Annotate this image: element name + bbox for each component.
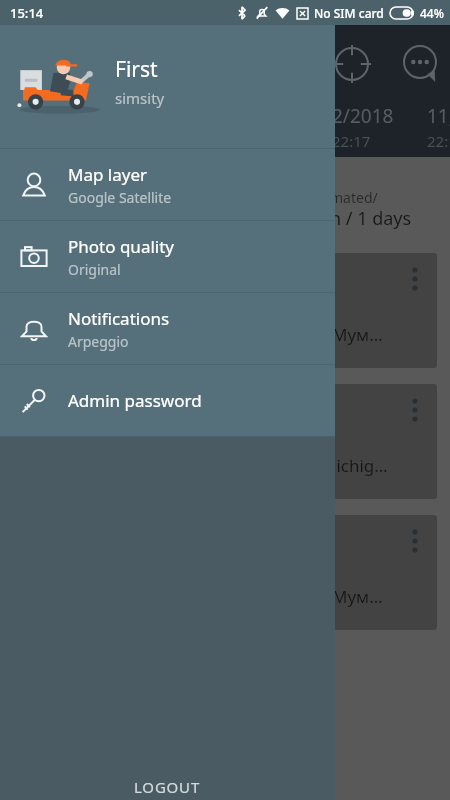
staticText: h / 1 days <box>330 206 412 231</box>
staticText: simsity <box>115 88 165 108</box>
staticText: 2/2018 <box>332 103 394 129</box>
button[interactable]: More options <box>403 267 427 291</box>
staticText: Мум… <box>332 323 383 346</box>
staticText: Google Satellite <box>68 188 172 207</box>
staticText: lichig… <box>332 454 388 477</box>
button[interactable]: More options <box>300 515 437 630</box>
button[interactable]: More options <box>403 529 427 553</box>
staticText: Original <box>68 260 121 279</box>
button[interactable]: Notifications <box>0 293 335 364</box>
button[interactable]: Photo quality <box>0 221 335 292</box>
button[interactable]: More options <box>403 398 427 422</box>
staticText: 44% <box>420 5 444 21</box>
staticText: 15:14 <box>10 4 44 22</box>
staticText: 22:1 <box>427 131 450 151</box>
staticText: Мум… <box>332 585 383 608</box>
staticText: 11, <box>427 103 450 129</box>
button[interactable]: LOGOUT <box>0 758 335 800</box>
staticText: Map layer <box>68 163 148 186</box>
staticText: mated/ <box>330 188 378 207</box>
staticText: Arpeggio <box>68 332 129 351</box>
staticText: LOGOUT <box>134 777 201 797</box>
staticText: First <box>115 55 158 84</box>
button[interactable]: Map layer <box>0 149 335 220</box>
staticText: Admin password <box>68 389 202 412</box>
staticText: 22:17 <box>332 131 371 151</box>
button[interactable]: More options <box>300 384 437 499</box>
staticText: Photo quality <box>68 235 174 258</box>
staticText: No SIM card <box>314 5 384 21</box>
button[interactable]: Admin password <box>0 365 335 436</box>
button[interactable]: More options <box>300 253 437 368</box>
staticText: Notifications <box>68 307 170 330</box>
